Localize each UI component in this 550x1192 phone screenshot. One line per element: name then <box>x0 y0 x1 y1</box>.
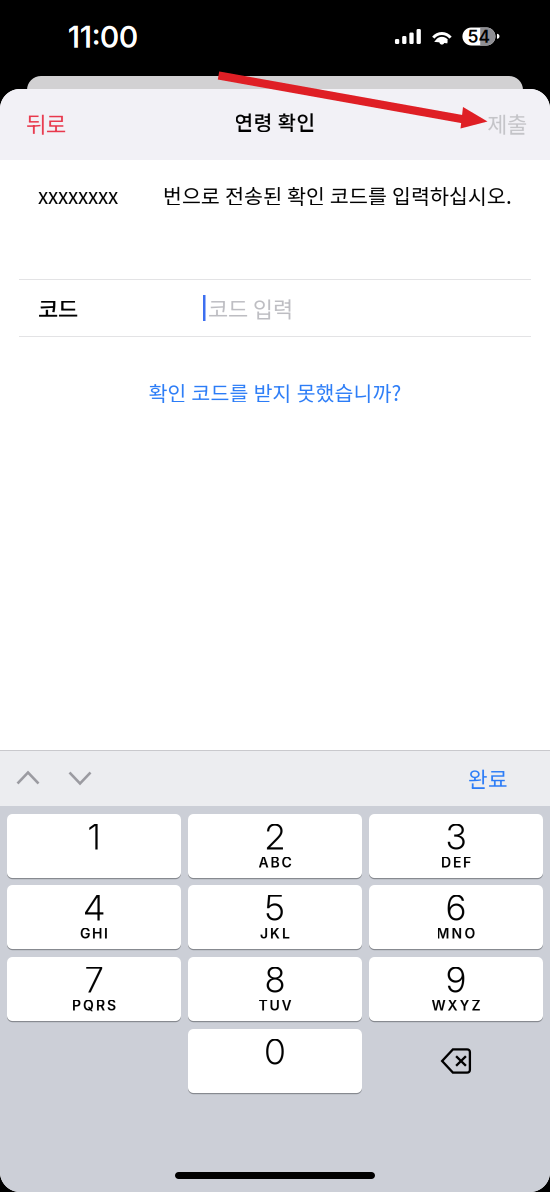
button[interactable]: 완료 <box>420 750 530 806</box>
button[interactable]: 4 <box>7 885 181 949</box>
staticText: 11:00 <box>68 19 138 55</box>
staticText: 뒤로 <box>26 107 66 139</box>
staticText: W X Y Z <box>431 997 480 1014</box>
button[interactable]: 3 <box>369 814 543 878</box>
staticText: T U V <box>258 997 291 1014</box>
button[interactable] <box>68 770 92 786</box>
staticText: 8 <box>265 959 285 1001</box>
staticText: P Q R S <box>72 997 116 1014</box>
staticText: 0 <box>264 1031 285 1073</box>
button[interactable]: 6 <box>369 885 543 949</box>
staticText: 2 <box>265 816 285 858</box>
staticText: 완료 <box>468 763 508 793</box>
staticText: 7 <box>85 959 103 1001</box>
staticText: 코드 <box>38 292 78 324</box>
staticText: 번으로 전송된 확인 코드를 입력하십시오. <box>163 180 512 210</box>
button[interactable]: 뒤로 <box>0 89 130 157</box>
staticText: 3 <box>446 816 466 858</box>
staticText: 연령 확인 <box>234 107 315 136</box>
button[interactable]: 9 <box>369 957 543 1021</box>
staticText: 6 <box>446 887 466 929</box>
button[interactable]: 2 <box>188 814 362 878</box>
button[interactable]: 제출 <box>420 89 550 157</box>
button[interactable]: 8 <box>188 957 362 1021</box>
staticText: 9 <box>446 959 466 1001</box>
staticText: 4 <box>83 887 104 929</box>
staticText: G H I <box>80 925 108 942</box>
staticText: M N O <box>436 925 475 942</box>
button[interactable]: 1 <box>7 814 181 878</box>
staticText: xxxxxxxx <box>38 180 118 210</box>
button[interactable]: 확인 코드를 받지 못했습니까? <box>0 372 550 412</box>
staticText: 확인 코드를 받지 못했습니까? <box>148 377 401 407</box>
button[interactable] <box>369 1029 543 1093</box>
staticText: D E F <box>441 854 471 871</box>
staticText: 54 <box>467 26 490 47</box>
button[interactable]: 5 <box>188 885 362 949</box>
button[interactable]: 7 <box>7 957 181 1021</box>
staticText: 5 <box>265 887 285 929</box>
button[interactable]: 0 <box>188 1029 362 1093</box>
staticText: A B C <box>258 854 291 871</box>
staticText: 1 <box>88 816 100 858</box>
staticText: J K L <box>260 925 290 942</box>
staticText: 코드 입력 <box>208 292 293 324</box>
button[interactable] <box>16 770 40 786</box>
staticText: 제출 <box>487 107 527 139</box>
